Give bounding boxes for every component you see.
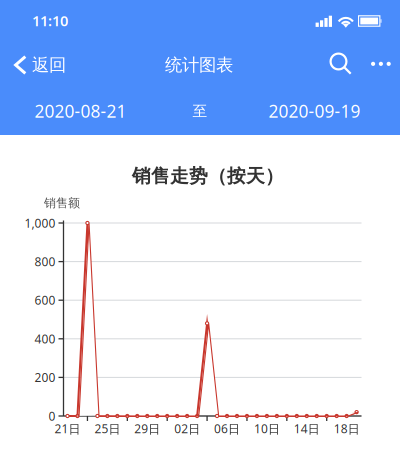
staticText: 2020-08-21 [34,99,126,122]
staticText: 06日 [214,421,240,437]
staticText: 02日 [174,421,200,437]
button[interactable]: 2020-08-21 [20,96,140,126]
staticText: 销售额 [44,196,80,210]
staticText: 200 [34,369,55,385]
staticText: 统计图表 [165,54,233,76]
staticText: 返回 [32,54,66,76]
button[interactable]: More [359,42,400,86]
staticText: 29日 [134,421,160,437]
staticText: 2020-09-19 [268,99,360,122]
button[interactable]: Search [319,42,363,86]
staticText: 600 [34,292,55,308]
button[interactable]: 2020-09-19 [254,96,374,126]
staticText: 25日 [94,421,120,437]
staticText: 至 [192,102,207,120]
staticText: 18日 [334,421,360,437]
staticText: 销售走势（按天） [132,164,284,187]
button[interactable]: 返回 [4,43,76,87]
staticText: 10日 [254,421,280,437]
staticText: 0 [48,408,55,424]
staticText: 800 [34,254,55,269]
staticText: 400 [34,331,55,347]
staticText: 21日 [54,421,80,437]
staticText: 11:10 [32,11,68,30]
staticText: 14日 [294,421,320,437]
staticText: 1,000 [24,215,55,231]
